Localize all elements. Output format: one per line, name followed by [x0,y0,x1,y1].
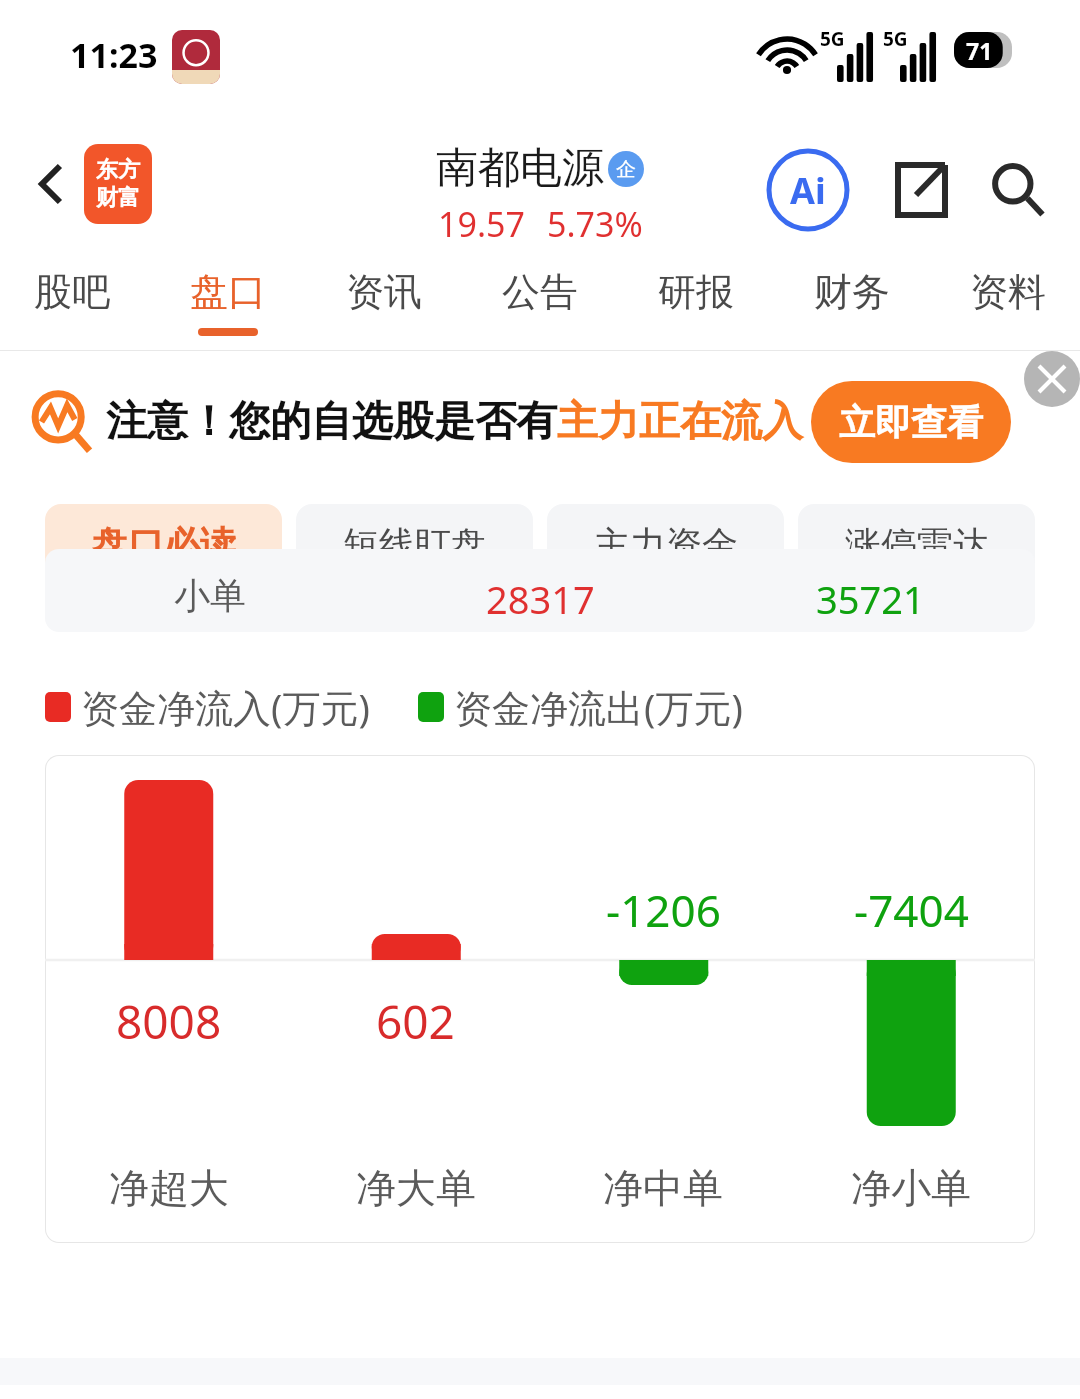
staticText: 财富 [96,184,140,212]
button[interactable]: 涨停雷达 [798,504,1035,584]
staticText: 小单 [174,573,246,618]
button[interactable]: 股吧 [34,250,110,350]
staticText: 公告 [502,268,578,316]
staticText: -7404 [854,880,969,940]
staticText: 8008 [116,990,222,1053]
button[interactable]: 资讯 [346,250,422,350]
staticText: 5G [883,26,908,52]
staticText: 净小单 [851,1163,971,1213]
button[interactable]: AI assistant [766,148,850,232]
staticText: 35721 [816,573,925,625]
staticText: 净超大 [109,1163,229,1213]
staticText: 盘口必读 [92,522,236,567]
staticText: 资料 [970,268,1046,316]
staticText: Ai [790,166,826,215]
staticText: -1206 [606,880,721,940]
staticText: 71 [966,35,993,66]
button[interactable]: 盘口必读 [45,504,282,584]
button[interactable]: Search [978,150,1058,230]
button[interactable]: Back [14,146,90,222]
staticText: 净中单 [603,1163,723,1213]
staticText: 研报 [658,268,734,316]
staticText: 19.57 [438,201,525,247]
button[interactable]: 资料 [970,250,1046,350]
staticText: 5G [820,26,845,52]
staticText: 主力正在流入 [557,396,803,448]
staticText: 净大单 [356,1163,476,1213]
staticText: 企 [616,157,636,182]
staticText: 财务 [814,268,890,316]
staticText: 涨停雷达 [845,522,989,567]
staticText: 东方 [96,156,140,184]
staticText: 资金净流入(万元) [81,681,370,733]
staticText: 资讯 [346,268,422,316]
staticText: 南都电源 [436,142,604,195]
button[interactable]: 主力资金 [547,504,784,584]
staticText: 短线盯盘 [343,522,487,567]
button[interactable]: 研报 [658,250,734,350]
button[interactable]: 盘口 [190,250,266,350]
button[interactable]: 财务 [814,250,890,350]
staticText: 注意！您的自选股是否有 [106,396,557,448]
button[interactable]: 短线盯盘 [296,504,533,584]
button[interactable]: 东方 [84,144,152,224]
staticText: 股吧 [34,268,110,316]
staticText: 28317 [486,573,595,625]
staticText: 立即查看 [839,400,983,445]
button[interactable]: 公告 [502,250,578,350]
button[interactable]: Share [880,150,960,230]
staticText: 11:23 [70,32,158,78]
button[interactable]: 立即查看 [839,381,983,463]
staticText: 盘口 [190,268,266,316]
staticText: 资金净流出(万元) [454,681,743,733]
button[interactable]: Close ad [1024,351,1080,407]
staticText: 主力资金 [594,522,738,567]
staticText: 602 [376,990,455,1053]
staticText: 5.73% [547,201,643,247]
